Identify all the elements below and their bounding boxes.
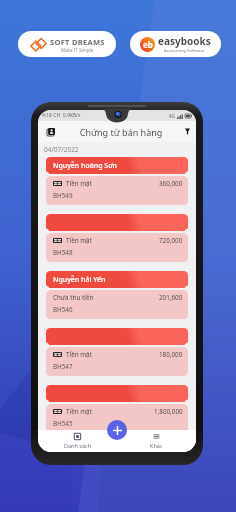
button[interactable]: Nguyễn hoàng Sơn bbox=[46, 157, 188, 205]
staticText: Tiền mặt bbox=[66, 179, 92, 188]
staticText: Nguyễn hoàng Sơn bbox=[53, 161, 117, 171]
staticText: 1,800,000 bbox=[154, 407, 183, 416]
button[interactable]: Tiền mặt bbox=[46, 328, 188, 376]
staticText: 4G bbox=[169, 113, 175, 119]
staticText: BH547 bbox=[53, 362, 73, 371]
button[interactable]: Tiền mặt bbox=[46, 385, 188, 433]
staticText: Accounting Software bbox=[164, 48, 205, 54]
button[interactable]: Add bbox=[107, 420, 127, 440]
staticText: 201,600 bbox=[159, 293, 183, 302]
button[interactable]: Tiền mặt bbox=[46, 214, 188, 262]
button[interactable]: SOFT DREAMS bbox=[18, 31, 116, 57]
staticText: Chứng từ bán hàng bbox=[63, 126, 179, 138]
staticText: Chưa thu tiền bbox=[53, 293, 94, 302]
staticText: 04/07/2022 bbox=[44, 145, 79, 154]
button[interactable]: Filter bbox=[179, 121, 196, 142]
staticText: Make IT Simple bbox=[61, 47, 94, 53]
staticText: 4:18 CH 0,9KB/s bbox=[42, 112, 81, 119]
staticText: Khác bbox=[150, 442, 163, 449]
staticText: eb bbox=[143, 39, 153, 50]
staticText: BH549 bbox=[53, 191, 73, 200]
staticText: SOFT DREAMS bbox=[50, 37, 105, 47]
staticText: Tiền mặt bbox=[66, 350, 92, 359]
button[interactable]: Khác bbox=[117, 430, 196, 452]
staticText: Tiền mặt bbox=[66, 236, 92, 245]
staticText: BH545 bbox=[53, 419, 73, 428]
staticText: BH548 bbox=[53, 248, 73, 257]
button[interactable]: Nguyễn hải Yến bbox=[46, 271, 188, 319]
staticText: easybooks bbox=[158, 34, 211, 48]
staticText: Tiền mặt bbox=[66, 407, 92, 416]
staticText: 180,000 bbox=[159, 350, 183, 359]
button[interactable]: Account bbox=[38, 121, 63, 142]
staticText: Danh sách bbox=[64, 442, 92, 449]
staticText: 360,000 bbox=[159, 179, 183, 188]
staticText: Nguyễn hải Yến bbox=[53, 275, 106, 285]
button[interactable]: Danh sách bbox=[38, 430, 117, 452]
staticText: BH546 bbox=[53, 305, 73, 314]
button[interactable]: eb bbox=[130, 31, 221, 57]
staticText: 720,000 bbox=[159, 236, 183, 245]
